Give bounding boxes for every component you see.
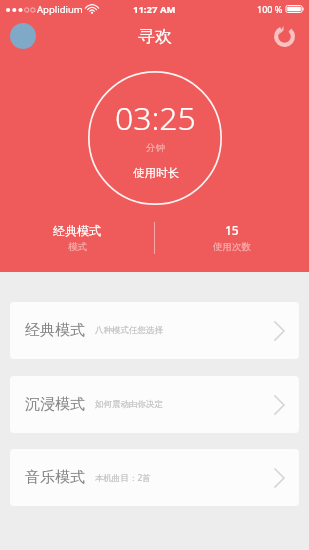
button[interactable]: Reset: [265, 17, 303, 55]
staticText: 03:25: [115, 96, 196, 140]
staticText: 使用时长: [133, 166, 179, 180]
staticText: 音乐模式: [25, 468, 85, 487]
staticText: 11:27 AM: [133, 3, 176, 16]
button[interactable]: 经典模式: [0, 223, 154, 253]
staticText: 100 %: [257, 3, 283, 15]
button[interactable]: Profile: [4, 17, 42, 55]
staticText: 沉浸模式: [25, 395, 85, 414]
staticText: 经典模式: [25, 321, 85, 340]
staticText: 如何震动由你决定: [95, 399, 163, 410]
button[interactable]: 经典模式: [10, 302, 299, 359]
staticText: 八种模式任您选择: [95, 325, 163, 336]
staticText: 寻欢: [138, 26, 172, 47]
button[interactable]: 沉浸模式: [10, 376, 299, 433]
staticText: 经典模式: [53, 223, 101, 238]
staticText: 本机曲目：2首: [95, 472, 151, 484]
staticText: 15: [225, 222, 239, 238]
staticText: 使用次数: [213, 241, 251, 253]
staticText: 分钟: [146, 142, 165, 154]
button[interactable]: 15: [155, 222, 309, 253]
staticText: Applidium: [37, 3, 83, 16]
button[interactable]: 音乐模式: [10, 449, 299, 506]
staticText: 模式: [68, 241, 87, 253]
